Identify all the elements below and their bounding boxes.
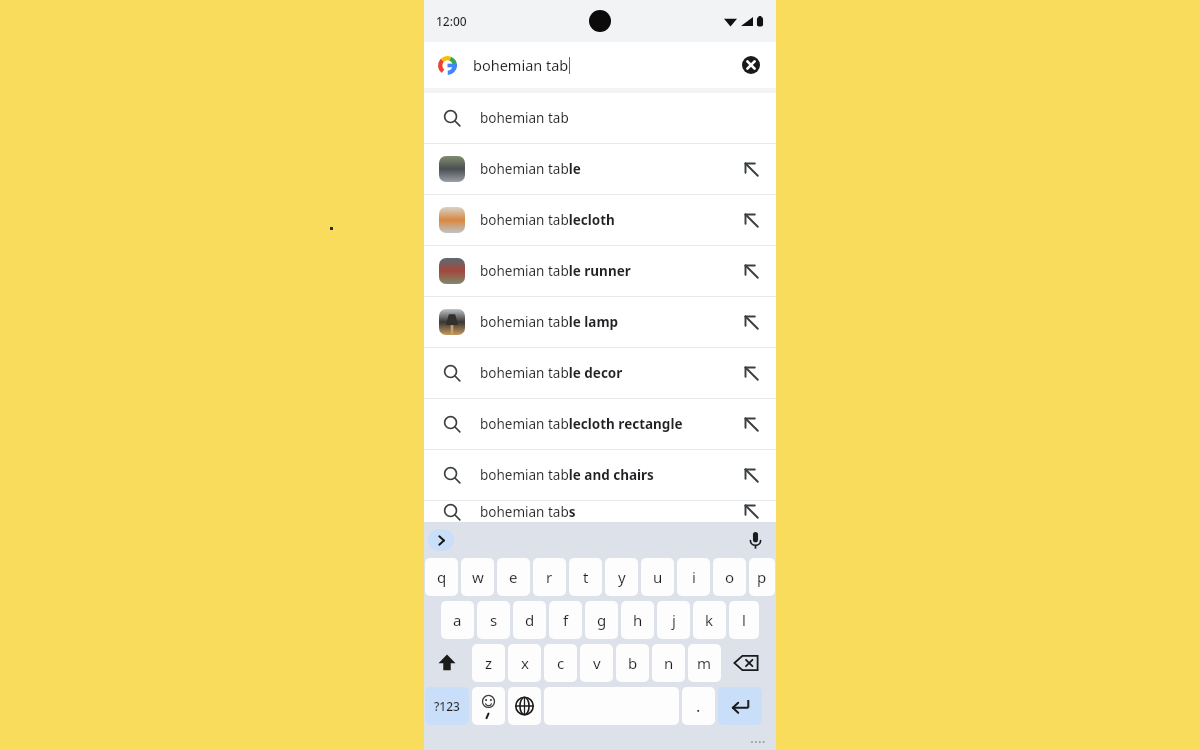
button[interactable]: Enter — [718, 687, 762, 725]
button[interactable]: bohemian table lamp — [424, 297, 776, 348]
staticText: 12:00 — [436, 13, 467, 29]
staticText: f — [563, 610, 569, 630]
button[interactable]: x — [508, 644, 541, 682]
staticText: bohemian tablecloth rectangle — [480, 415, 683, 433]
button[interactable]: j — [657, 601, 690, 639]
staticText: s — [490, 610, 498, 630]
staticText: w — [472, 567, 484, 587]
button[interactable]: s — [477, 601, 510, 639]
button[interactable]: n — [652, 644, 685, 682]
button[interactable]: bohemian table and chairs — [424, 450, 776, 501]
staticText: bohemian tablecloth — [480, 211, 615, 229]
button[interactable]: Insert suggestion — [738, 501, 764, 522]
staticText: bohemian tab — [473, 55, 569, 75]
staticText: z — [485, 653, 493, 673]
staticText: bohemian table and chairs — [480, 466, 654, 484]
staticText: o — [725, 567, 735, 587]
staticText: bohemian tab — [480, 109, 569, 127]
staticText: q — [437, 567, 447, 587]
button[interactable]: m — [688, 644, 721, 682]
staticText: t — [583, 567, 589, 587]
button[interactable]: bohemian tab — [424, 93, 776, 144]
staticText: l — [742, 610, 746, 630]
button[interactable]: e — [497, 558, 530, 596]
button[interactable]: k — [693, 601, 726, 639]
button[interactable]: f — [549, 601, 582, 639]
staticText: bohemian table decor — [480, 364, 623, 382]
staticText: b — [628, 653, 638, 673]
staticText: n — [664, 653, 674, 673]
button[interactable]: p — [749, 558, 775, 596]
staticText: g — [597, 610, 607, 630]
button[interactable]: Backspace — [724, 644, 768, 682]
staticText: i — [692, 567, 696, 587]
staticText: h — [633, 610, 643, 630]
button[interactable]: u — [641, 558, 674, 596]
button[interactable]: Insert suggestion — [738, 462, 764, 488]
button[interactable]: c — [544, 644, 577, 682]
button[interactable]: Insert suggestion — [738, 309, 764, 335]
button[interactable]: d — [513, 601, 546, 639]
button[interactable]: Insert suggestion — [738, 207, 764, 233]
staticText: x — [521, 653, 529, 673]
button[interactable]: bohemian tabs — [424, 501, 776, 522]
button[interactable]: b — [616, 644, 649, 682]
staticText: bohemian table runner — [480, 262, 631, 280]
button[interactable]: t — [569, 558, 602, 596]
button[interactable]: More suggestions — [428, 529, 454, 551]
button[interactable]: g — [585, 601, 618, 639]
button[interactable]: a — [441, 601, 474, 639]
staticText: bohemian table — [480, 160, 581, 178]
button[interactable]: bohemian tablecloth rectangle — [424, 399, 776, 450]
staticText: p — [757, 567, 767, 587]
staticText: j — [672, 610, 676, 630]
button[interactable]: Insert suggestion — [738, 258, 764, 284]
staticText: m — [697, 653, 712, 673]
button[interactable]: Voice input — [742, 527, 768, 553]
staticText: y — [618, 567, 626, 587]
button[interactable]: i — [677, 558, 710, 596]
staticText: c — [557, 653, 565, 673]
staticText: k — [705, 610, 714, 630]
button[interactable]: r — [533, 558, 566, 596]
button[interactable]: h — [621, 601, 654, 639]
staticText: a — [453, 610, 462, 630]
button[interactable]: Emoji and comma — [472, 687, 505, 725]
button[interactable]: bohemian table — [424, 144, 776, 195]
button[interactable]: . — [682, 687, 715, 725]
button[interactable]: Insert suggestion — [738, 360, 764, 386]
button[interactable]: bohemian table runner — [424, 246, 776, 297]
staticText: v — [593, 653, 601, 673]
button[interactable]: ?123 — [425, 687, 469, 725]
button[interactable]: q — [425, 558, 458, 596]
staticText: bohemian table lamp — [480, 313, 619, 331]
button[interactable]: l — [729, 601, 759, 639]
button[interactable]: Switch language — [508, 687, 541, 725]
staticText: d — [525, 610, 535, 630]
button[interactable]: Insert suggestion — [738, 156, 764, 182]
staticText: ?123 — [434, 698, 460, 714]
button[interactable]: bohemian tablecloth — [424, 195, 776, 246]
button[interactable]: Clear query — [738, 52, 764, 78]
button[interactable]: Shift — [425, 644, 469, 682]
staticText: u — [653, 567, 663, 587]
button[interactable]: Insert suggestion — [738, 411, 764, 437]
staticText: . — [696, 695, 701, 717]
staticText: e — [509, 567, 518, 587]
staticText: bohemian tabs — [480, 503, 576, 521]
button[interactable]: v — [580, 644, 613, 682]
button[interactable]: z — [472, 644, 505, 682]
staticText: r — [546, 567, 553, 587]
button[interactable]: o — [713, 558, 746, 596]
button[interactable]: w — [461, 558, 494, 596]
button[interactable]: bohemian table decor — [424, 348, 776, 399]
button[interactable]: y — [605, 558, 638, 596]
